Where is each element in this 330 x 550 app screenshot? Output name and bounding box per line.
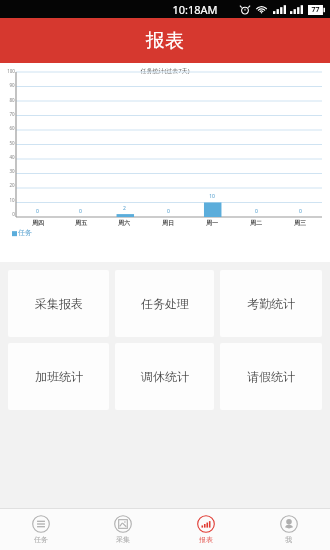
button[interactable]: 加班统计 — [8, 343, 109, 410]
staticText: 50 — [9, 140, 15, 146]
staticText: 40 — [9, 154, 15, 160]
staticText: 30 — [9, 168, 15, 174]
staticText: 任务统计(过去7天) — [140, 67, 190, 75]
staticText: 任务 — [34, 535, 48, 544]
staticText: 任务 — [18, 228, 32, 237]
staticText: 90 — [9, 82, 15, 88]
staticText: 10 — [9, 197, 15, 203]
staticText: 采集报表 — [35, 296, 83, 311]
staticText: 0 — [79, 208, 82, 215]
staticText: 周二 — [250, 219, 262, 227]
staticText: 考勤统计 — [247, 296, 295, 311]
button[interactable]: 我 — [247, 509, 330, 550]
staticText: 调休统计 — [141, 369, 189, 384]
button[interactable]: 调休统计 — [115, 343, 214, 410]
button[interactable]: 考勤统计 — [220, 270, 322, 337]
button[interactable]: 请假统计 — [220, 343, 322, 410]
button[interactable]: 报表 — [164, 509, 247, 550]
staticText: 70 — [9, 111, 15, 117]
staticText: 100 — [7, 68, 15, 74]
staticText: 10:18AM — [172, 2, 218, 17]
staticText: 0 — [167, 208, 170, 215]
staticText: 我 — [285, 535, 292, 544]
staticText: 加班统计 — [35, 369, 83, 384]
button[interactable]: 采集 — [82, 509, 164, 550]
staticText: 报表 — [199, 535, 213, 544]
staticText: 周五 — [75, 219, 87, 227]
staticText: 周四 — [32, 219, 44, 227]
staticText: 80 — [9, 97, 15, 103]
staticText: 77 — [311, 5, 320, 15]
staticText: 10 — [209, 193, 215, 200]
staticText: 2 — [123, 205, 126, 212]
button[interactable]: 任务 — [0, 509, 82, 550]
staticText: 周三 — [294, 219, 306, 227]
staticText: 60 — [9, 125, 15, 131]
staticText: 0 — [12, 211, 15, 217]
staticText: 周一 — [206, 219, 218, 227]
staticText: 0 — [299, 208, 302, 215]
staticText: 0 — [36, 208, 39, 215]
button[interactable]: 任务处理 — [115, 270, 214, 337]
staticText: 0 — [255, 208, 258, 215]
staticText: 请假统计 — [247, 369, 295, 384]
staticText: 周六 — [118, 219, 130, 227]
staticText: 采集 — [116, 535, 130, 544]
staticText: 报表 — [146, 29, 184, 53]
staticText: 20 — [9, 182, 15, 188]
button[interactable]: 采集报表 — [8, 270, 109, 337]
staticText: 周日 — [162, 219, 174, 227]
staticText: 任务处理 — [141, 296, 189, 311]
